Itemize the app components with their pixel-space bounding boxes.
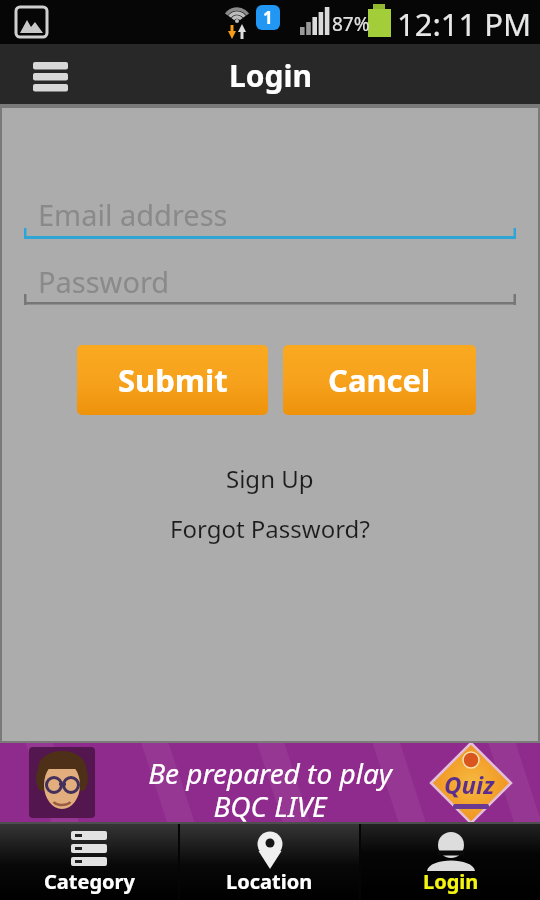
button[interactable]: Location [180, 822, 359, 900]
button[interactable]: Forgot Password? [140, 508, 400, 548]
staticText: Login [229, 55, 312, 96]
staticText: Login [423, 868, 479, 895]
button[interactable]: Cancel [283, 345, 476, 415]
button[interactable]: Category [0, 822, 178, 900]
staticText: 1 [263, 6, 273, 29]
button[interactable]: Email address [24, 186, 516, 239]
staticText: BQC LIVE [0, 787, 540, 825]
button[interactable]: Be prepared to play [0, 743, 540, 822]
button[interactable] [26, 56, 74, 96]
staticText: Submit [118, 359, 228, 401]
staticText: Email address [38, 195, 228, 234]
button[interactable]: Sign Up [195, 458, 345, 498]
staticText: Location [226, 868, 313, 895]
staticText: Forgot Password? [170, 512, 370, 545]
staticText: 12:11 PM [397, 3, 532, 45]
staticText: 87% [332, 11, 370, 37]
staticText: Be prepared to play [0, 754, 540, 792]
button[interactable]: Submit [77, 345, 268, 415]
staticText: Password [38, 262, 170, 301]
button[interactable]: Password [24, 252, 516, 305]
staticText: Sign Up [226, 462, 314, 495]
staticText: Cancel [328, 359, 431, 401]
staticText: Quiz [444, 768, 495, 801]
staticText: Category [44, 868, 135, 895]
button[interactable]: Login [361, 822, 540, 900]
